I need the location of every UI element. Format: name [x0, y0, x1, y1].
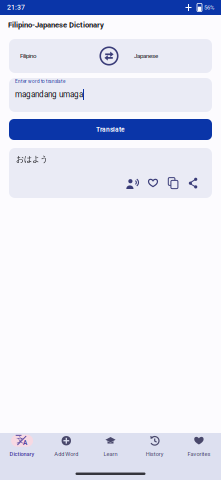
- button[interactable]: Copy: [163, 175, 183, 191]
- button[interactable]: Share: [183, 175, 203, 191]
- staticText: magandang umaga: [15, 90, 83, 99]
- button[interactable]: 文: [0, 433, 44, 462]
- staticText: 56%: [204, 4, 214, 11]
- staticText: 21:37: [7, 3, 25, 11]
- button[interactable]: Favorites: [177, 433, 221, 462]
- staticText: Learn: [103, 451, 117, 457]
- staticText: Add Word: [54, 451, 78, 457]
- staticText: おはよう: [16, 154, 48, 164]
- staticText: Favorites: [187, 451, 210, 457]
- staticText: History: [146, 451, 164, 457]
- staticText: Filipino-Japanese Dictionary: [8, 20, 104, 29]
- staticText: Japanese: [134, 52, 158, 60]
- staticText: Filipino: [20, 52, 36, 60]
- button[interactable]: Learn: [88, 433, 133, 462]
- staticText: Dictionary: [10, 451, 35, 457]
- button[interactable]: Translate: [9, 119, 212, 140]
- staticText: 文: [16, 435, 23, 445]
- staticText: A: [23, 439, 27, 447]
- button[interactable]: Pronounce: [123, 175, 143, 191]
- staticText: Translate: [96, 126, 125, 133]
- button[interactable]: Favorite: [143, 175, 163, 191]
- button[interactable]: Swap languages: [90, 43, 122, 69]
- staticText: Enter word to translate: [15, 79, 65, 84]
- button[interactable]: Add Word: [44, 433, 88, 462]
- button[interactable]: History: [133, 433, 177, 462]
